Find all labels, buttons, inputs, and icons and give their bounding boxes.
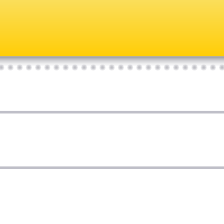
- button[interactable]: Navigate up: [14, 17, 36, 39]
- button[interactable]: Navigate up: [0, 0, 224, 56]
- button[interactable]: More options: [188, 17, 210, 39]
- button[interactable]: [0, 166, 224, 224]
- button[interactable]: [0, 111, 224, 166]
